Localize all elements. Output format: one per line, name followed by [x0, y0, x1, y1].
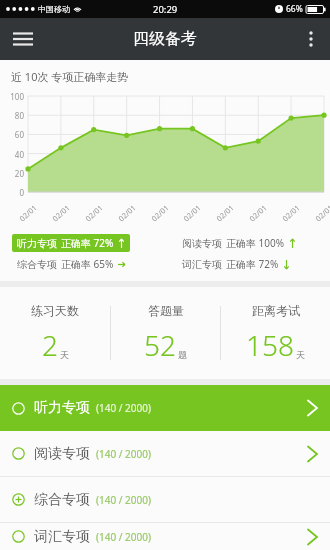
staticText: 近 10次 专项正确率走势 — [11, 69, 129, 84]
button[interactable]: 练习天数 — [0, 299, 110, 368]
staticText: 02/01 — [149, 203, 171, 223]
button[interactable]: 综合专项 — [0, 477, 330, 522]
staticText: 0 — [0, 187, 24, 198]
button[interactable]: More options — [292, 18, 330, 60]
staticText: 80 — [0, 110, 24, 121]
staticText: 正确率 65% — [61, 257, 114, 271]
staticText: 练习天数 — [31, 303, 79, 318]
staticText: 中国移动 — [38, 4, 70, 14]
staticText: 02/01 — [280, 203, 302, 223]
staticText: 100 — [0, 91, 24, 102]
staticText: 词汇专项 — [182, 258, 222, 271]
staticText: 02/01 — [247, 203, 269, 223]
staticText: 02/01 — [50, 203, 72, 223]
staticText: (140 / 2000) — [96, 493, 151, 507]
staticText: 52 — [144, 326, 176, 364]
button[interactable]: 答题量 — [111, 299, 220, 368]
staticText: 阅读专项 — [34, 445, 90, 463]
button[interactable]: 词汇专项 — [0, 523, 330, 550]
staticText: 阅读专项 — [182, 237, 222, 250]
button[interactable]: 综合专项 — [12, 255, 130, 273]
staticText: 20:29 — [153, 3, 178, 16]
button[interactable]: 听力专项 — [0, 385, 330, 431]
staticText: 距离考试 — [252, 303, 300, 318]
staticText: (140 / 2000) — [96, 447, 151, 461]
button[interactable]: 距离考试 — [221, 299, 330, 368]
staticText: 综合专项 — [34, 491, 90, 509]
staticText: 60 — [0, 129, 24, 140]
staticText: 题 — [178, 349, 187, 360]
staticText: 158 — [246, 326, 294, 364]
staticText: 四级备考 — [133, 29, 197, 49]
staticText: 答题量 — [148, 303, 184, 318]
staticText: 02/01 — [83, 203, 105, 223]
staticText: 2 — [42, 326, 58, 364]
button[interactable]: 听力专项 — [12, 234, 130, 252]
staticText: 02/01 — [116, 203, 138, 223]
button[interactable]: Menu — [0, 18, 46, 60]
staticText: 02/01 — [17, 203, 39, 223]
staticText: 20 — [0, 168, 24, 179]
staticText: 天 — [296, 349, 305, 360]
staticText: 40 — [0, 149, 24, 160]
staticText: 天 — [60, 349, 69, 360]
staticText: 词汇专项 — [34, 528, 90, 546]
staticText: 听力专项 — [17, 237, 57, 250]
staticText: 02/01 — [181, 203, 203, 223]
staticText: 综合专项 — [17, 258, 57, 271]
staticText: 正确率 100% — [226, 236, 285, 250]
staticText: 正确率 72% — [61, 236, 114, 250]
button[interactable]: 阅读专项 — [0, 431, 330, 476]
staticText: 66% — [286, 3, 303, 15]
staticText: 听力专项 — [34, 399, 90, 417]
staticText: 02/01 — [214, 203, 236, 223]
staticText: (140 / 2000) — [96, 530, 151, 544]
staticText: (140 / 2000) — [96, 401, 151, 415]
button[interactable]: 词汇专项 — [177, 255, 295, 273]
staticText: 02/01 — [313, 203, 330, 223]
button[interactable]: 阅读专项 — [177, 234, 301, 252]
staticText: 正确率 72% — [226, 257, 279, 271]
